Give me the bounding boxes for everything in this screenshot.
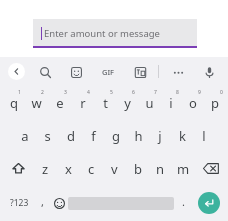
button[interactable]: Shift (2, 152, 34, 185)
staticText: s (44, 127, 51, 145)
button[interactable]: q (2, 87, 25, 119)
button[interactable]: a (13, 119, 36, 152)
staticText: 1 (18, 89, 21, 96)
button[interactable]: Voice input (199, 62, 219, 82)
button[interactable]: f (82, 119, 105, 152)
staticText: y (124, 94, 131, 112)
button[interactable]: Translate (130, 62, 150, 82)
staticText: m (177, 160, 190, 178)
button[interactable]: GIF (97, 61, 119, 83)
button[interactable]: u (138, 87, 160, 119)
staticText: t (103, 94, 108, 112)
staticText: 6 (132, 89, 135, 96)
staticText: n (156, 160, 165, 178)
button[interactable]: j (149, 119, 171, 152)
button[interactable]: . (174, 188, 192, 218)
staticText: h (134, 127, 143, 145)
staticText: l (202, 127, 206, 145)
staticText: 8 (176, 89, 179, 96)
button[interactable]: z (34, 152, 57, 185)
staticText: f (91, 127, 96, 145)
staticText: x (65, 160, 72, 178)
button[interactable]: More options (168, 62, 188, 82)
staticText: b (134, 160, 142, 178)
staticText: Enter amount or message (44, 27, 160, 40)
button[interactable]: o (182, 87, 204, 119)
staticText: r (80, 94, 86, 112)
button[interactable]: h (127, 119, 149, 152)
button[interactable]: y (116, 87, 138, 119)
button[interactable]: c (80, 152, 103, 185)
button[interactable]: , (35, 188, 50, 218)
button[interactable]: b (126, 152, 149, 185)
staticText: k (179, 127, 186, 145)
button[interactable]: p (204, 87, 226, 119)
button[interactable]: Stickers (66, 62, 86, 82)
staticText: j (158, 127, 162, 145)
staticText: w (31, 94, 42, 112)
staticText: 7 (154, 89, 157, 96)
staticText: p (211, 94, 219, 112)
button[interactable]: m (172, 152, 195, 185)
button[interactable]: Emoji (50, 188, 68, 218)
staticText: v (111, 160, 118, 178)
button[interactable]: Search (35, 62, 55, 82)
button[interactable]: i (160, 87, 182, 119)
button[interactable]: l (193, 119, 215, 152)
button[interactable]: v (103, 152, 126, 185)
staticText: . (182, 194, 185, 209)
button[interactable]: k (171, 119, 193, 152)
button[interactable]: g (105, 119, 127, 152)
button[interactable]: s (36, 119, 59, 152)
staticText: u (145, 94, 154, 112)
button[interactable]: t (94, 87, 116, 119)
button[interactable]: x (57, 152, 80, 185)
staticText: 5 (110, 89, 113, 96)
staticText: e (56, 94, 64, 112)
staticText: q (10, 94, 18, 112)
button[interactable]: d (59, 119, 82, 152)
button[interactable]: r (71, 87, 94, 119)
staticText: g (112, 127, 120, 145)
button[interactable]: Backspace (195, 152, 226, 185)
button[interactable]: Enter amount or message (33, 19, 197, 48)
button[interactable]: Enter (198, 192, 220, 214)
staticText: 2 (41, 89, 44, 96)
staticText: a (21, 127, 29, 145)
button[interactable]: e (48, 87, 71, 119)
button[interactable]: Back (8, 63, 25, 80)
staticText: , (41, 194, 44, 209)
staticText: 3 (64, 89, 67, 96)
staticText: i (169, 94, 173, 112)
staticText: ?123 (10, 197, 29, 209)
staticText: o (189, 94, 197, 112)
staticText: 4 (87, 89, 90, 96)
button[interactable]: ?123 (3, 188, 35, 218)
button[interactable]: w (25, 87, 48, 119)
staticText: z (42, 160, 49, 178)
staticText: c (88, 160, 95, 178)
staticText: 0 (220, 89, 223, 96)
staticText: d (67, 127, 75, 145)
button[interactable]: n (149, 152, 172, 185)
staticText: 9 (198, 89, 201, 96)
staticText: GIF (102, 67, 115, 77)
